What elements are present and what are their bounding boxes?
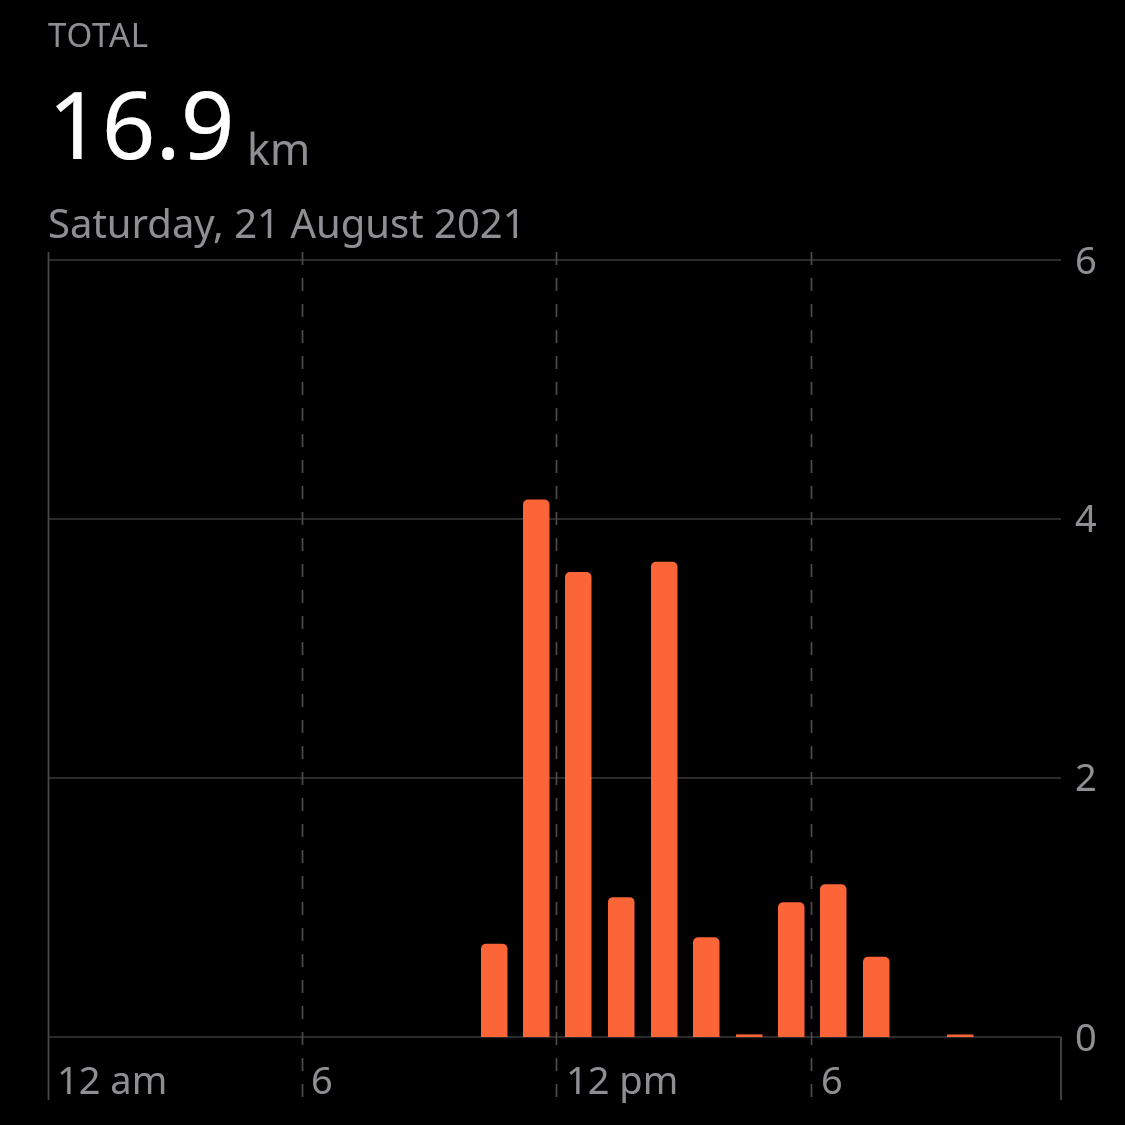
staticText: 6: [821, 1053, 843, 1105]
staticText: Saturday, 21 August 2021: [48, 195, 526, 249]
staticText: 12 pm: [566, 1053, 679, 1105]
staticText: 4: [1075, 491, 1097, 543]
staticText: TOTAL: [48, 12, 149, 57]
staticText: 2: [1075, 750, 1097, 802]
staticText: 0: [1075, 1010, 1097, 1062]
button[interactable]: Walking distance bar chart for Saturday …: [0, 0, 1125, 1125]
staticText: 16.9: [48, 59, 235, 187]
staticText: 6: [1075, 233, 1097, 285]
staticText: km: [247, 119, 311, 178]
staticText: 12 am: [57, 1053, 168, 1105]
staticText: 6: [311, 1053, 333, 1105]
